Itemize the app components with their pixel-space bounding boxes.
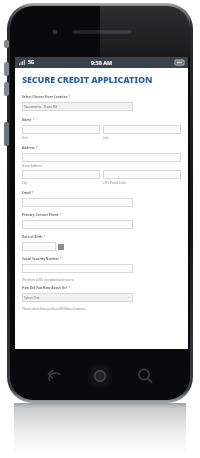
button[interactable]: [22, 198, 133, 207]
staticText: ⌃: [128, 105, 131, 108]
staticText: Address: [22, 146, 35, 150]
button[interactable]: Back: [44, 365, 66, 387]
staticText: Primary Contact Phone: [22, 213, 59, 217]
button[interactable]: [22, 220, 133, 229]
button[interactable]: Select One: [22, 293, 133, 302]
staticText: Email: [22, 191, 31, 195]
staticText: How Did You Hear About Us?: [22, 286, 68, 290]
staticText: Select One: [24, 296, 40, 300]
staticText: ⌃: [128, 296, 131, 299]
staticText: *: [68, 95, 71, 99]
staticText: First: [22, 136, 100, 140]
staticText: This form is SSL encrypted and secure.: [22, 278, 75, 282]
staticText: 9:30 AM: [91, 59, 112, 66]
staticText: ZIP / Postal Code: [103, 181, 181, 185]
button[interactable]: [103, 125, 181, 134]
button[interactable]: Home: [87, 363, 113, 389]
staticText: *: [43, 235, 46, 239]
button[interactable]: [103, 170, 181, 179]
staticText: *: [59, 213, 62, 217]
staticText: *: [68, 286, 71, 290]
staticText: *: [32, 118, 35, 122]
staticText: Name: [22, 118, 32, 122]
button[interactable]: [22, 125, 100, 134]
button[interactable]: [22, 170, 100, 179]
staticText: Sacramento - Florin Rd: [24, 105, 57, 109]
staticText: *: [31, 191, 34, 195]
staticText: City: [22, 181, 100, 185]
button[interactable]: [22, 242, 56, 251]
staticText: *: [59, 257, 62, 261]
staticText: Last: [103, 136, 181, 140]
staticText: Date of Birth: [22, 235, 43, 239]
staticText: *: [35, 146, 38, 150]
button[interactable]: [22, 264, 133, 273]
button[interactable]: Search: [134, 365, 156, 387]
staticText: SECURE CREDIT APPLICATION: [22, 73, 153, 85]
staticText: Street Address: [22, 164, 42, 168]
button[interactable]: [22, 153, 181, 162]
button[interactable]: Sacramento - Florin Rd: [22, 102, 133, 111]
staticText: Select Closest Store Location: [22, 95, 68, 99]
staticText: Social Security Number: [22, 257, 59, 261]
staticText: Please select how you found N Motion Jew…: [22, 307, 87, 311]
staticText: 5G: [28, 59, 35, 66]
